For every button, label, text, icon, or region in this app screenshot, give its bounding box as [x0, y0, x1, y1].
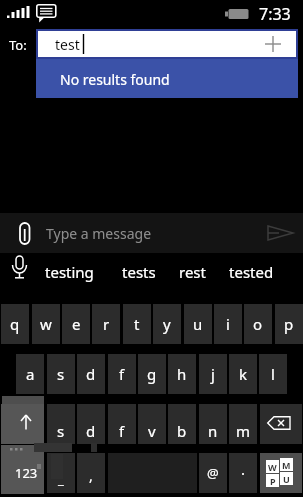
- staticText: v: [148, 421, 156, 441]
- staticText: f: [119, 421, 125, 441]
- button[interactable]: d: [77, 404, 105, 444]
- staticText: w: [40, 314, 52, 334]
- button[interactable]: [267, 223, 295, 243]
- staticText: 7:33: [259, 3, 291, 25]
- staticText: l: [271, 364, 275, 384]
- button[interactable]: [1, 404, 44, 444]
- button[interactable]: b: [168, 404, 196, 444]
- staticText: g: [147, 364, 157, 384]
- button[interactable]: q: [1, 304, 29, 344]
- staticText: b: [177, 421, 187, 441]
- button[interactable]: testing: [45, 262, 94, 282]
- button[interactable]: w: [32, 304, 60, 344]
- button[interactable]: _: [47, 453, 75, 493]
- button[interactable]: test: [36, 29, 298, 59]
- button[interactable]: tested: [229, 262, 274, 282]
- button[interactable]: No results found: [36, 59, 298, 98]
- staticText: r: [103, 314, 110, 334]
- staticText: test: [55, 35, 80, 54]
- button[interactable]: [1, 445, 44, 494]
- button[interactable]: [260, 453, 302, 493]
- button[interactable]: s: [47, 404, 75, 444]
- staticText: U: [283, 473, 290, 485]
- staticText: n: [208, 421, 218, 441]
- button[interactable]: f: [108, 404, 136, 444]
- staticText: W: [268, 461, 277, 473]
- staticText: _: [58, 470, 64, 488]
- staticText: f: [119, 364, 125, 384]
- staticText: s: [57, 421, 65, 441]
- staticText: ,: [89, 466, 93, 485]
- button[interactable]: e: [62, 304, 90, 344]
- button[interactable]: @: [199, 453, 227, 493]
- button[interactable]: h: [168, 354, 196, 394]
- button[interactable]: t: [123, 304, 151, 344]
- button[interactable]: l: [259, 354, 287, 394]
- staticText: d: [86, 364, 96, 384]
- button[interactable]: p: [275, 304, 303, 344]
- button[interactable]: ,: [77, 453, 105, 493]
- staticText: t: [134, 314, 140, 334]
- staticText: No results found: [60, 70, 170, 89]
- staticText: Type a message: [46, 224, 152, 243]
- staticText: j: [211, 364, 215, 384]
- button[interactable]: tests: [122, 262, 156, 282]
- button[interactable]: d: [77, 354, 105, 394]
- button[interactable]: u: [184, 304, 212, 344]
- staticText: .: [241, 459, 246, 479]
- staticText: s: [57, 364, 65, 384]
- staticText: a: [26, 364, 35, 384]
- button[interactable]: [11, 255, 28, 281]
- staticText: i: [226, 314, 230, 334]
- staticText: 123: [15, 464, 38, 482]
- button[interactable]: r: [92, 304, 120, 344]
- button[interactable]: j: [199, 354, 227, 394]
- button[interactable]: [260, 404, 302, 444]
- button[interactable]: y: [153, 304, 181, 344]
- staticText: P: [270, 475, 276, 487]
- staticText: k: [239, 364, 248, 384]
- button[interactable]: k: [229, 354, 257, 394]
- button[interactable]: v: [138, 404, 166, 444]
- staticText: @: [207, 464, 219, 482]
- button[interactable]: g: [138, 354, 166, 394]
- staticText: p: [284, 314, 294, 334]
- staticText: e: [72, 314, 81, 334]
- staticText: To:: [9, 36, 27, 54]
- staticText: u: [193, 314, 203, 334]
- button[interactable]: o: [244, 304, 272, 344]
- button[interactable]: n: [199, 404, 227, 444]
- button[interactable]: m: [229, 404, 257, 444]
- staticText: o: [253, 314, 263, 334]
- button[interactable]: rest: [179, 262, 206, 282]
- staticText: M: [282, 459, 291, 471]
- staticText: y: [163, 314, 171, 334]
- button[interactable]: [18, 221, 32, 249]
- staticText: d: [86, 421, 96, 441]
- button[interactable]: i: [214, 304, 242, 344]
- staticText: h: [177, 364, 187, 384]
- staticText: q: [10, 314, 20, 334]
- button[interactable]: s: [47, 354, 75, 394]
- button[interactable]: a: [16, 354, 44, 394]
- button[interactable]: f: [108, 354, 136, 394]
- staticText: m: [236, 421, 251, 441]
- button[interactable]: .: [229, 453, 257, 493]
